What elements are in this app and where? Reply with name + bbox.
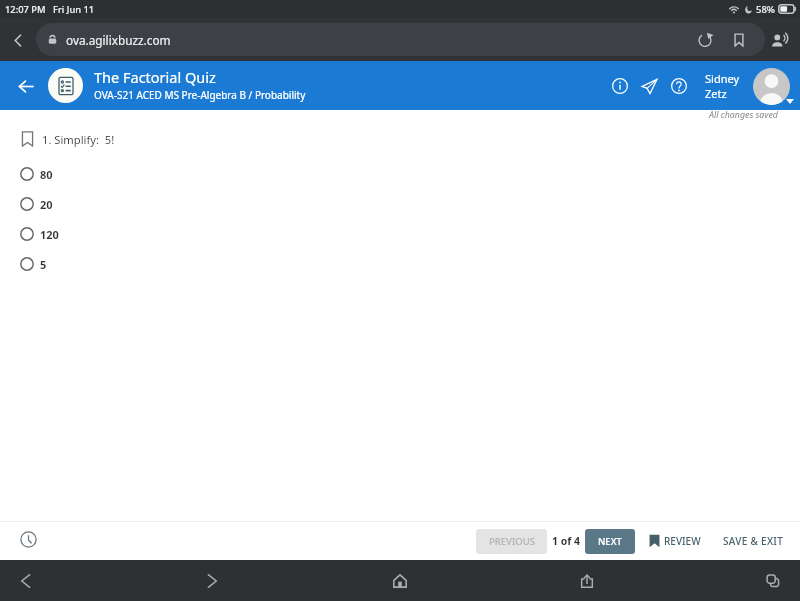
button[interactable]: PREVIOUS: [476, 529, 547, 554]
staticText: 80: [40, 167, 53, 182]
staticText: The Factorial Quiz: [94, 67, 216, 87]
staticText: 5: [40, 257, 47, 272]
staticText: 1. Simplify: 5!: [42, 132, 115, 147]
button[interactable]: Back: [12, 72, 40, 100]
button[interactable]: Forward: [196, 565, 228, 597]
staticText: 1 of 4: [552, 534, 581, 548]
staticText: NEXT: [598, 535, 622, 548]
button[interactable]: Back: [4, 26, 32, 54]
staticText: Fri Jun 11: [53, 3, 95, 16]
staticText: 12:07 PM: [5, 3, 46, 16]
button[interactable]: Back: [9, 565, 41, 597]
button[interactable]: Reload: [691, 26, 719, 54]
button[interactable]: Home: [384, 565, 416, 597]
staticText: 120: [40, 227, 59, 242]
button[interactable]: Recent tabs: [757, 565, 789, 597]
button[interactable]: Share with nearby: [764, 25, 794, 55]
button[interactable]: Timer: [17, 528, 39, 550]
button[interactable]: 80: [0, 159, 800, 189]
staticText: Sidney: [705, 71, 740, 86]
button[interactable]: NEXT: [585, 529, 635, 554]
button[interactable]: Sidney: [705, 69, 740, 103]
button[interactable]: Help: [665, 72, 693, 100]
button[interactable]: 20: [0, 189, 800, 219]
staticText: ova.agilixbuzz.com: [66, 32, 171, 48]
button[interactable]: 5: [0, 249, 800, 279]
button[interactable]: Bookmark: [725, 26, 753, 54]
button[interactable]: Information: [606, 72, 634, 100]
staticText: PREVIOUS: [489, 535, 535, 548]
button[interactable]: ova.agilixbuzz.com: [36, 23, 765, 56]
staticText: REVIEW: [664, 534, 701, 548]
staticText: 20: [40, 197, 53, 212]
button[interactable]: REVIEW: [649, 528, 701, 554]
staticText: 58%: [756, 3, 775, 16]
button[interactable]: SAVE & EXIT: [723, 528, 784, 554]
button[interactable]: Share: [571, 565, 603, 597]
button[interactable]: Account: [753, 68, 790, 105]
staticText: OVA-S21 ACED MS Pre-Algebra B / Probabil…: [94, 88, 306, 102]
button[interactable]: Send message: [635, 72, 663, 100]
button[interactable]: 120: [0, 219, 800, 249]
staticText: SAVE & EXIT: [723, 534, 784, 548]
staticText: Zetz: [705, 86, 727, 101]
staticText: All changes saved: [709, 109, 778, 121]
button[interactable]: Flag question: [19, 131, 35, 147]
